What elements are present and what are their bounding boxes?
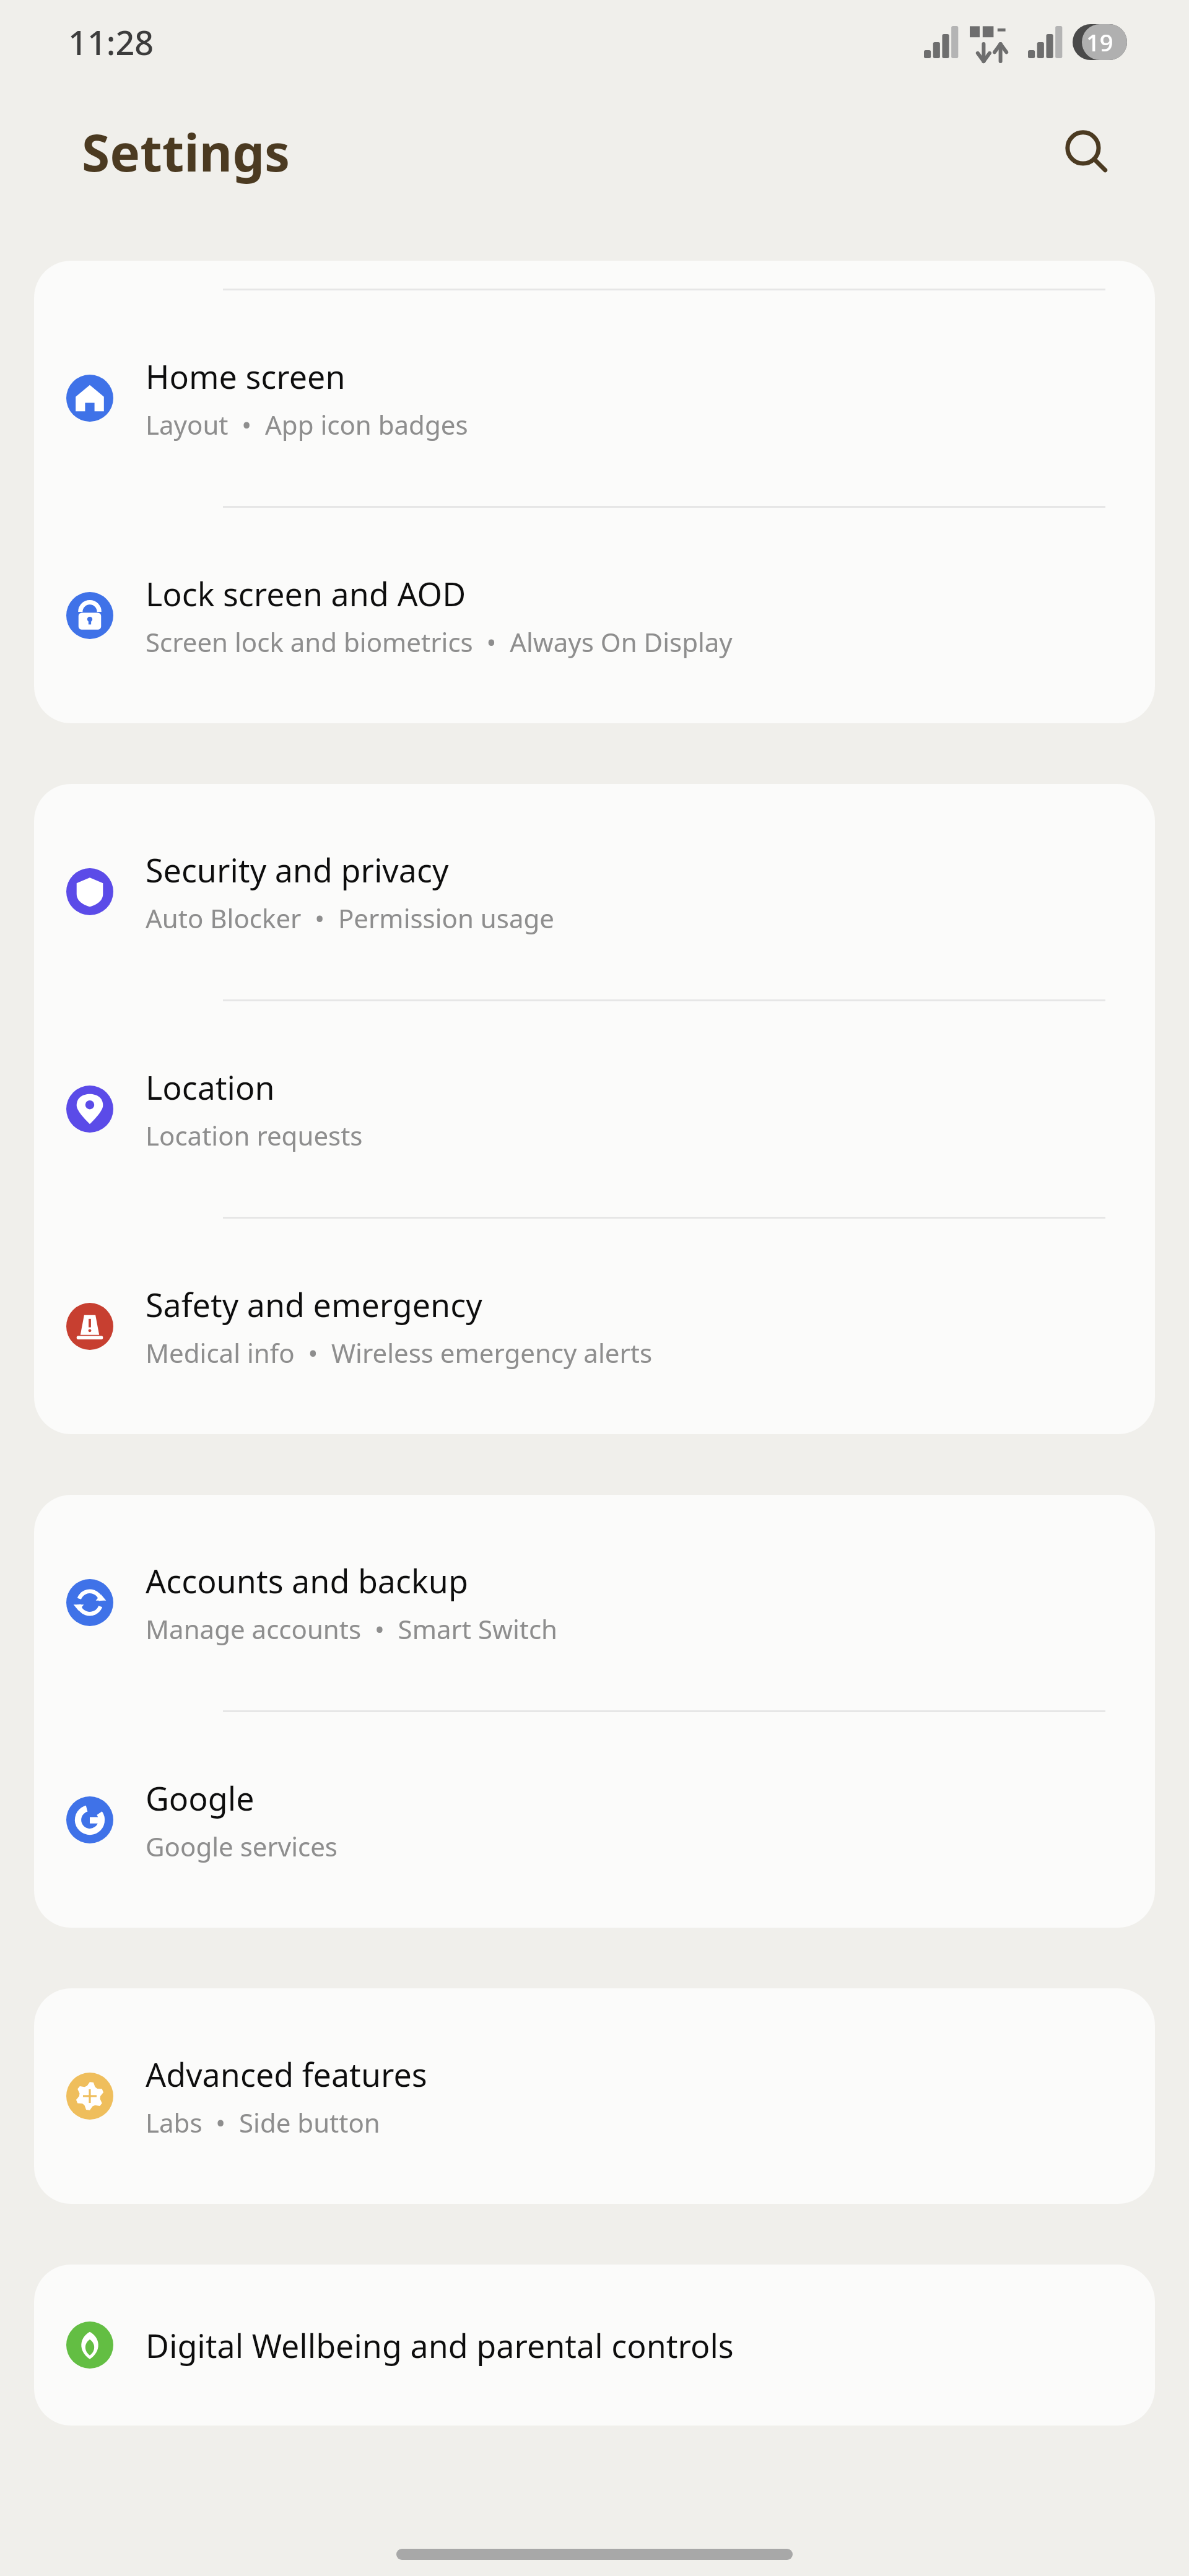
button[interactable]: Home screen bbox=[34, 290, 1155, 506]
staticText: Labs • Side button bbox=[146, 2105, 380, 2140]
button[interactable]: Safety and emergency bbox=[34, 1219, 1155, 1434]
button[interactable]: Lock screen and AOD bbox=[34, 508, 1155, 723]
staticText: Manage accounts • Smart Switch bbox=[146, 1611, 558, 1647]
staticText: 19 bbox=[1086, 26, 1113, 58]
button[interactable]: Digital Wellbeing and parental controls bbox=[34, 2265, 1155, 2426]
staticText: Auto Blocker • Permission usage bbox=[146, 900, 554, 936]
staticText: Layout • App icon badges bbox=[146, 407, 468, 442]
staticText: Safety and emergency bbox=[146, 1282, 482, 1326]
staticText: Medical info • Wireless emergency alerts bbox=[146, 1335, 653, 1370]
button[interactable]: Security and privacy bbox=[34, 784, 1155, 999]
staticText: Digital Wellbeing and parental controls bbox=[146, 2323, 734, 2367]
staticText: Accounts and backup bbox=[146, 1559, 468, 1603]
button[interactable]: Search settings bbox=[1053, 118, 1121, 186]
button[interactable]: Advanced features bbox=[34, 1988, 1155, 2204]
staticText: Location bbox=[146, 1065, 275, 1109]
staticText: Home screen bbox=[146, 354, 346, 398]
staticText: Security and privacy bbox=[146, 848, 449, 892]
staticText: Lock screen and AOD bbox=[146, 572, 466, 616]
staticText: Google services bbox=[146, 1829, 338, 1864]
button[interactable]: Location bbox=[34, 1001, 1155, 1217]
staticText: Screen lock and biometrics • Always On D… bbox=[146, 624, 733, 659]
staticText: Settings bbox=[82, 117, 290, 186]
staticText: Google bbox=[146, 1776, 255, 1820]
staticText: Location requests bbox=[146, 1118, 363, 1153]
staticText: Advanced features bbox=[146, 2052, 427, 2096]
staticText: 11:28 bbox=[68, 19, 154, 65]
button[interactable]: Accounts and backup bbox=[34, 1495, 1155, 1710]
button[interactable]: Google bbox=[34, 1712, 1155, 1928]
